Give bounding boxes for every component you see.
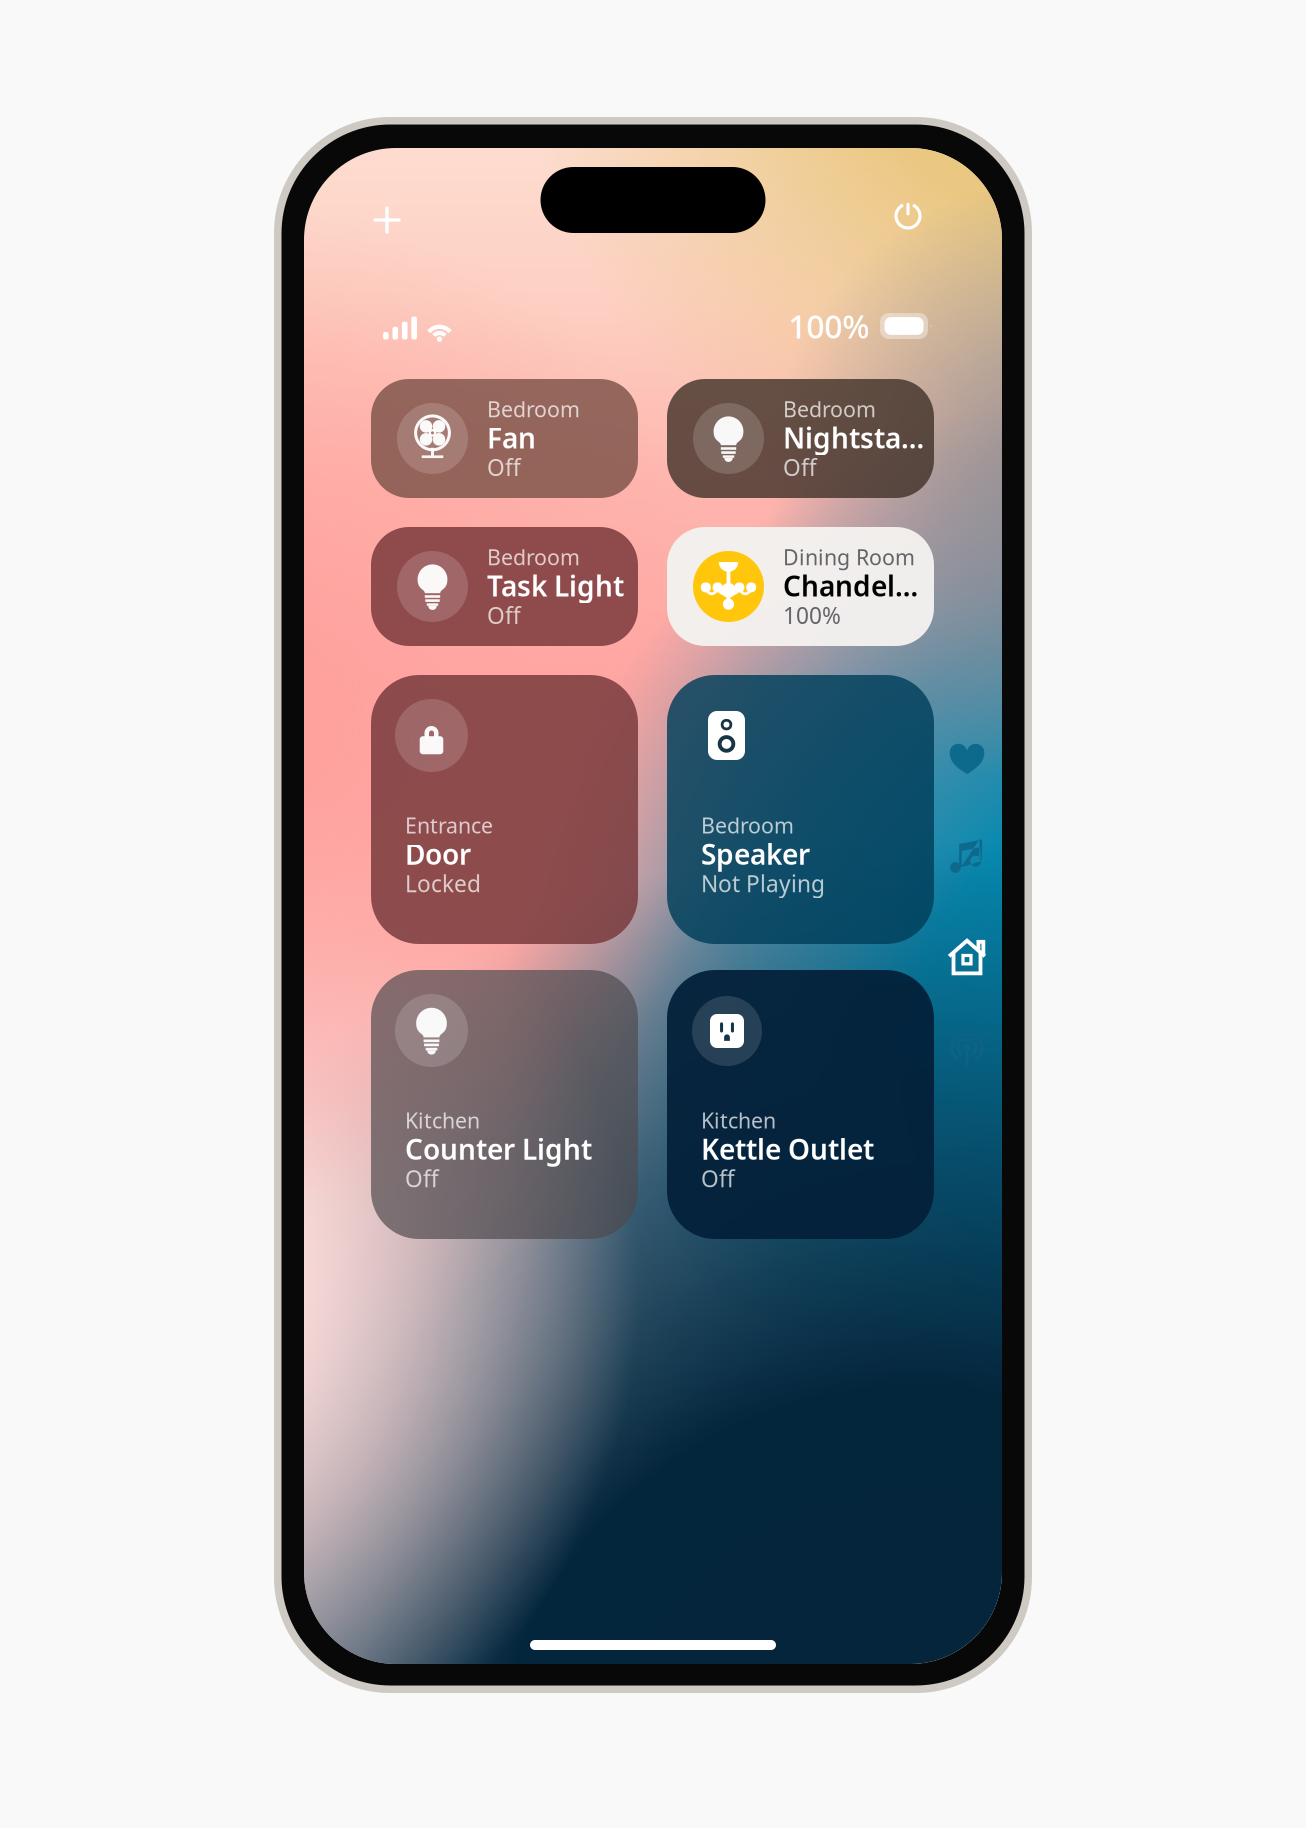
staticText: Off [405,1163,439,1194]
staticText: Not Playing [701,868,825,899]
staticText: Bedroom [701,811,794,839]
staticText: Speaker [701,835,810,872]
button[interactable]: Home [941,931,993,983]
staticText: Fan [487,419,536,456]
button[interactable]: Kitchen [371,970,638,1239]
staticText: Door [405,835,471,872]
staticText: Locked [405,868,481,899]
staticText: Kitchen [405,1106,480,1134]
staticText: Counter Light [405,1130,592,1167]
staticText: Nightsta… [783,419,924,456]
staticText: Task Light [487,567,624,604]
button[interactable]: Power [880,188,936,244]
button[interactable]: Bedroom [667,675,934,944]
staticText: Kitchen [701,1106,776,1134]
staticText: Bedroom [487,543,580,571]
staticText: Chandel… [783,567,918,604]
staticText: Off [487,452,521,482]
button[interactable]: Media [941,831,993,883]
button[interactable]: Dining Room [667,527,934,646]
staticText: 100% [783,600,841,630]
staticText: Bedroom [783,395,876,423]
staticText: 100% [788,305,869,347]
button[interactable]: Bedroom [371,527,638,646]
button[interactable]: Bedroom [371,379,638,498]
staticText: Off [487,600,521,630]
staticText: Dining Room [783,543,915,571]
button[interactable]: Cameras [941,1025,993,1077]
button[interactable]: Favourites [941,732,993,784]
staticText: Entrance [405,811,493,839]
staticText: Off [783,452,817,482]
button[interactable]: Kitchen [667,970,934,1239]
button[interactable]: Entrance [371,675,638,944]
staticText: Kettle Outlet [701,1130,874,1167]
staticText: Bedroom [487,395,580,423]
button[interactable]: Add [359,192,415,248]
button[interactable]: Bedroom [667,379,934,498]
staticText: Off [701,1163,735,1194]
